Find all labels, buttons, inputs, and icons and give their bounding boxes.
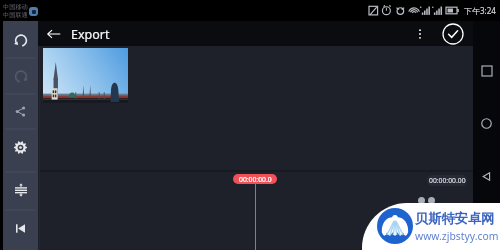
staticText: Export xyxy=(71,26,110,43)
button[interactable]: Confirm export xyxy=(442,23,464,45)
button[interactable]: Back xyxy=(473,163,500,190)
button[interactable]: Share xyxy=(3,94,38,128)
staticText: 贝斯特安卓网 xyxy=(415,210,495,227)
button[interactable]: Home xyxy=(473,110,500,137)
staticText: 00:00:00.0 xyxy=(239,175,272,184)
staticText: 00:00:00.00 xyxy=(429,176,466,185)
staticText: 中国移动 xyxy=(3,3,28,11)
button[interactable]: Recents xyxy=(473,57,500,84)
button[interactable]: More options xyxy=(410,24,430,44)
button[interactable]: Back xyxy=(43,23,65,45)
button[interactable]: Settings xyxy=(3,130,38,164)
button[interactable]: Audio mixer xyxy=(3,173,38,207)
staticText: 下午3:24 xyxy=(464,5,496,16)
button[interactable]: Undo xyxy=(3,23,38,57)
staticText: 中国联通 xyxy=(3,11,28,19)
button[interactable]: Redo xyxy=(3,59,38,93)
staticText: www.zjbstyy.com xyxy=(415,229,499,243)
button[interactable]: Skip to start xyxy=(3,211,38,245)
